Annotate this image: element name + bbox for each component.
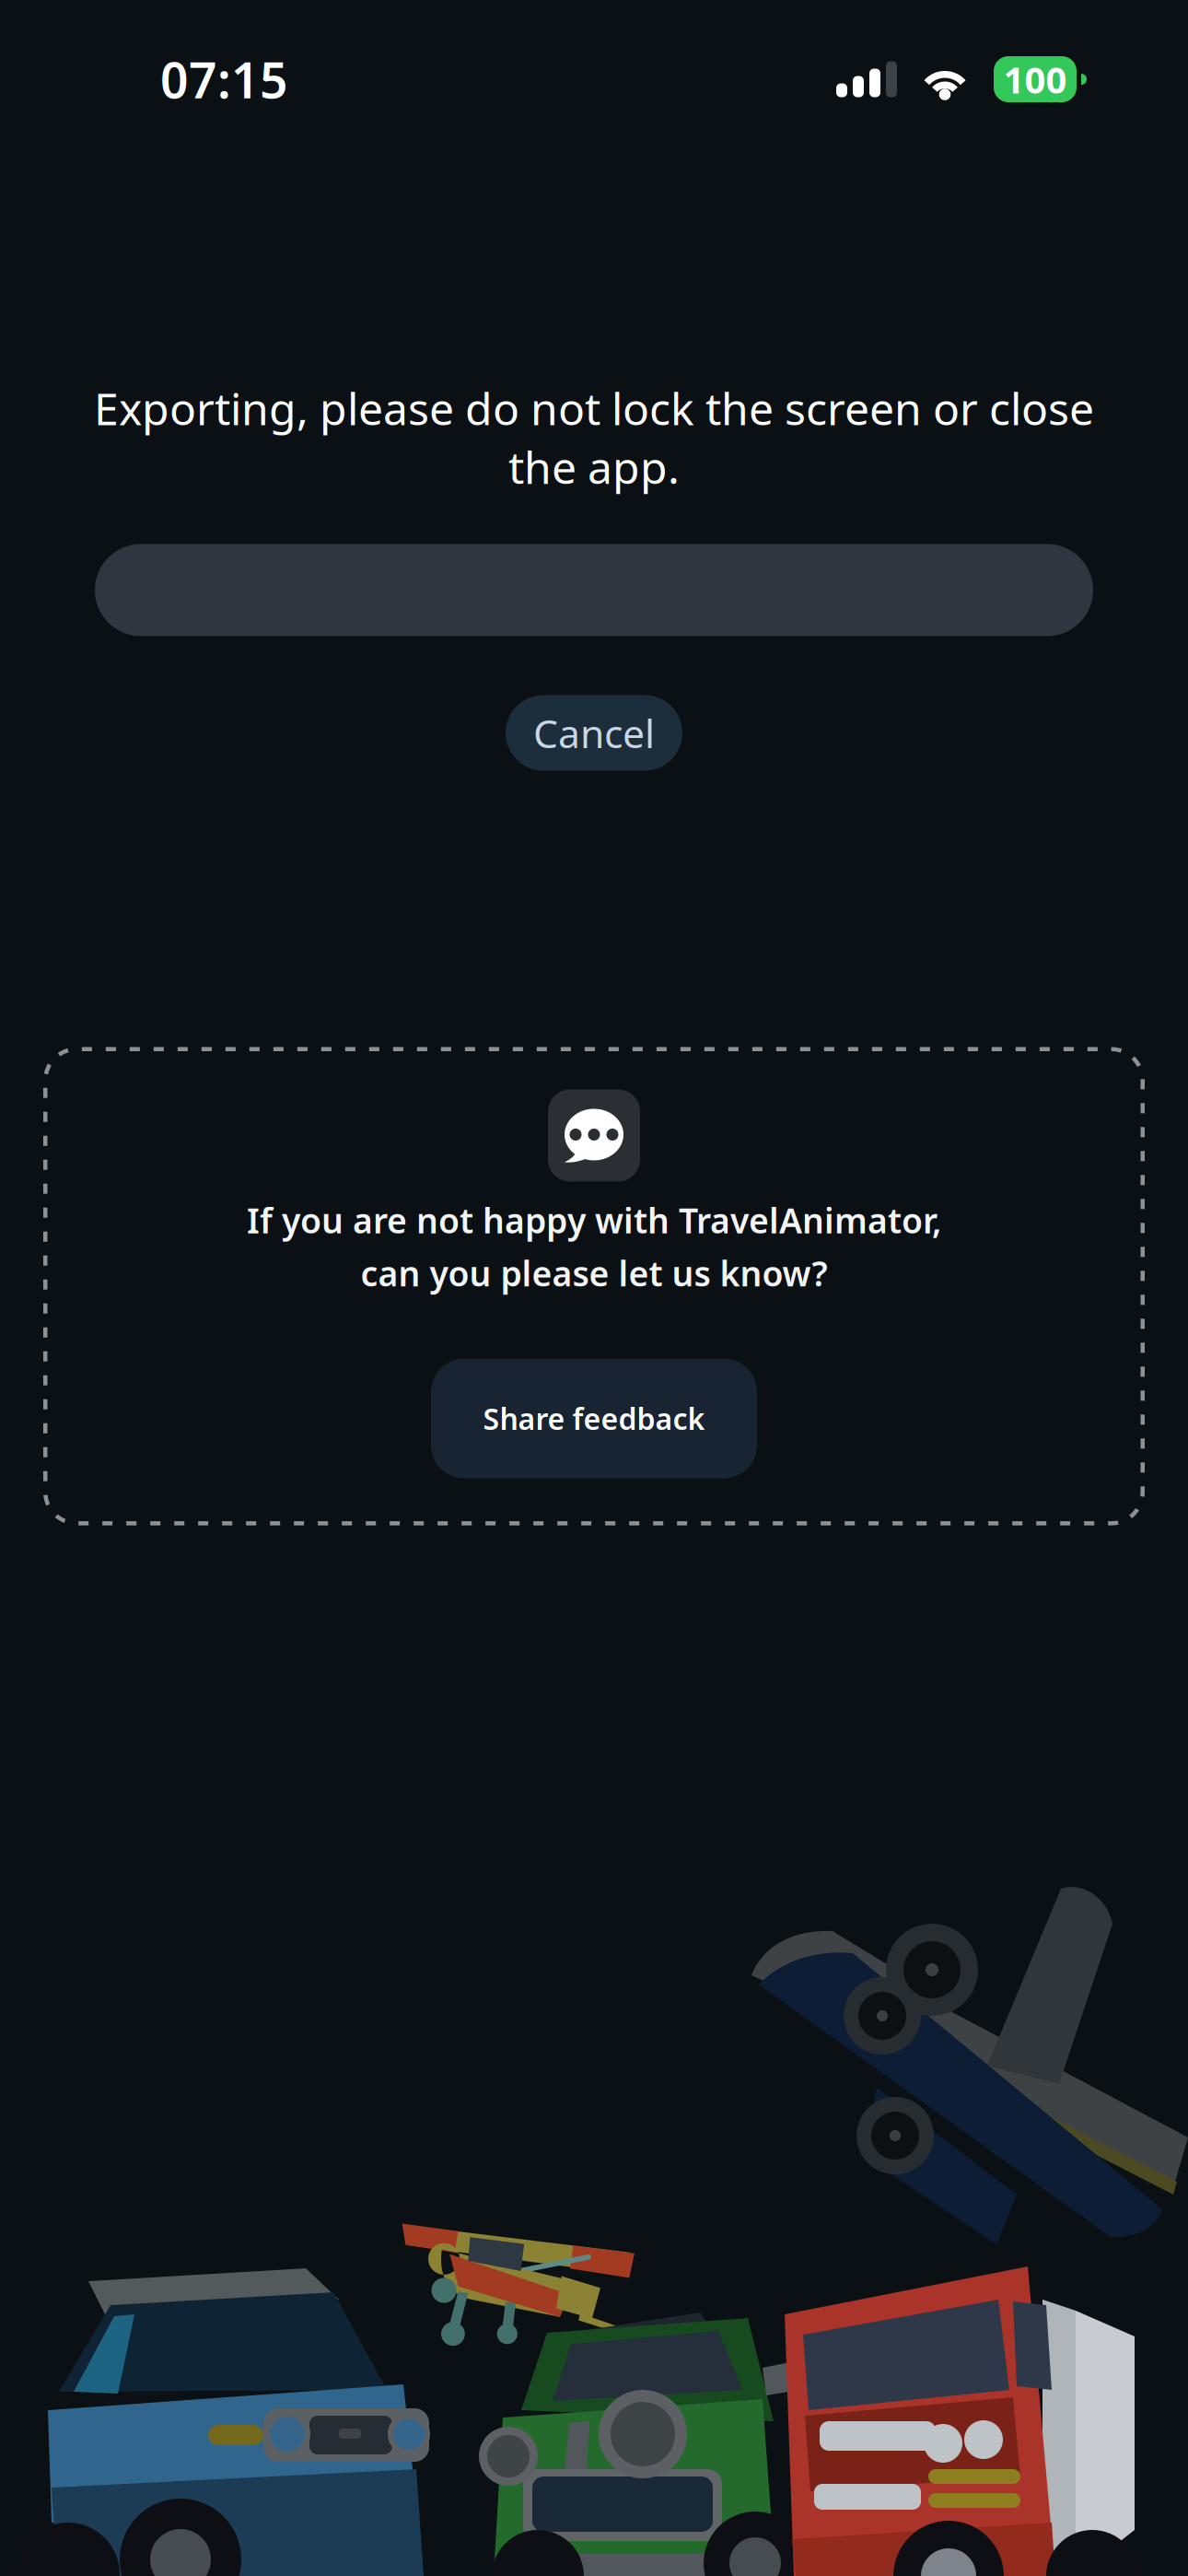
staticText: can you please let us know? [361,1250,827,1296]
staticText: Cancel [533,707,655,759]
staticText: 100 [1003,55,1067,104]
button[interactable]: Share feedback [431,1359,757,1478]
staticText: Share feedback [483,1399,705,1438]
staticText: 07:15 [160,47,288,112]
button[interactable]: Cancel [506,695,682,771]
staticText: Exporting, please do not lock the screen… [94,379,1094,437]
staticText: If you are not happy with TravelAnimator… [247,1197,941,1243]
staticText: the app. [508,437,680,496]
